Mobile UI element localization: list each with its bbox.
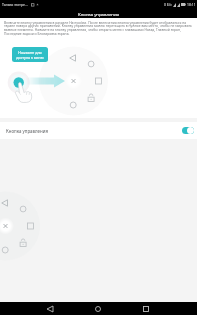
button[interactable]: Home: [74, 302, 122, 315]
staticText: Нажмите для доступа к меню: [16, 50, 44, 60]
staticText: Только экстре...: [2, 2, 28, 7]
button[interactable]: Back: [26, 302, 74, 315]
staticText: Кнопка управления: [6, 128, 48, 134]
staticText: 18:11: [187, 2, 196, 7]
button[interactable]: Recents: [122, 302, 170, 315]
staticText: 0 Б/с: [164, 2, 172, 7]
button[interactable]: Нажмите для доступа к меню: [12, 47, 48, 62]
button[interactable]: Кнопка управления: [0, 122, 197, 139]
staticText: Кнопка управления: [78, 11, 120, 17]
staticText: Включите кнопку управления в разделе Нас…: [4, 20, 193, 36]
